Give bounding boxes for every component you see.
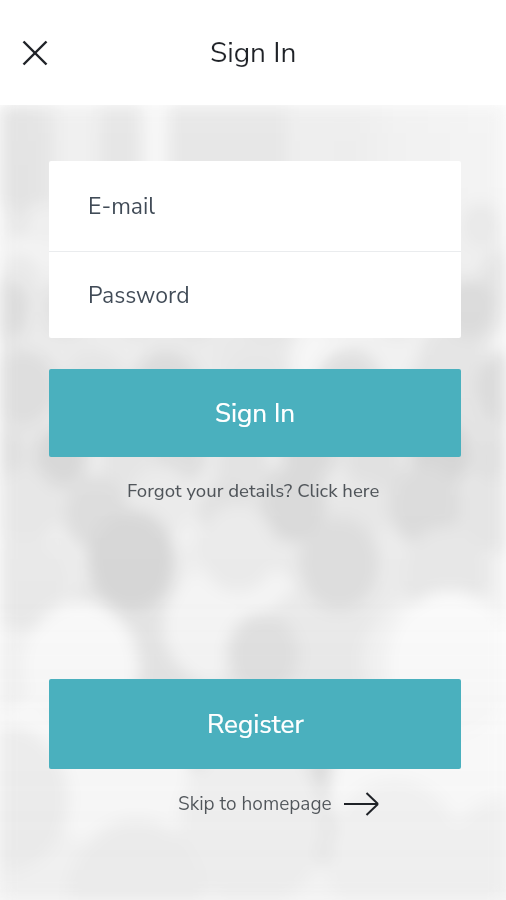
staticText: E-mail	[88, 191, 156, 222]
staticText: Password	[88, 280, 190, 311]
staticText: Register	[207, 707, 304, 742]
button[interactable]: E-mail	[49, 161, 461, 251]
button[interactable]: Skip to homepage	[168, 786, 388, 822]
button[interactable]: Password	[49, 252, 461, 338]
staticText: Sign In	[215, 396, 296, 431]
button[interactable]: Forgot your details? Click here	[117, 473, 390, 505]
staticText: Sign In	[210, 34, 297, 72]
button[interactable]: Close	[11, 29, 59, 77]
button[interactable]: Sign In	[49, 369, 461, 457]
button[interactable]: Register	[49, 679, 461, 769]
staticText: Forgot your details? Click here	[127, 478, 380, 500]
staticText: Skip to homepage	[178, 791, 332, 817]
